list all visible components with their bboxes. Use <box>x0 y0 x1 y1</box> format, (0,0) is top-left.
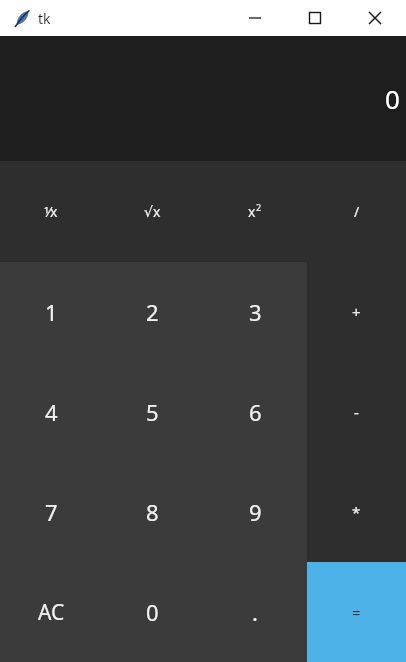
staticText: - <box>354 402 359 422</box>
button[interactable]: / <box>307 161 406 262</box>
button[interactable]: 8 <box>102 462 203 562</box>
button[interactable]: + <box>307 262 406 362</box>
button[interactable]: Minimize <box>232 0 278 36</box>
button[interactable]: AC <box>0 562 102 662</box>
button[interactable]: 9 <box>203 462 307 562</box>
button[interactable]: = <box>307 562 406 662</box>
button[interactable]: * <box>307 462 406 562</box>
button[interactable]: 6 <box>203 362 307 462</box>
button[interactable]: 5 <box>102 362 203 462</box>
staticText: 5 <box>146 397 159 427</box>
staticText: + <box>352 302 361 322</box>
staticText: 2 <box>256 201 262 213</box>
staticText: AC <box>38 598 65 627</box>
staticText: 0 <box>146 597 159 627</box>
button[interactable]: Close <box>352 0 398 36</box>
staticText: 0 <box>385 81 400 116</box>
staticText: ⅟x <box>44 202 58 221</box>
staticText: = <box>352 602 361 622</box>
staticText: 6 <box>249 397 262 427</box>
staticText: 9 <box>249 497 262 527</box>
button[interactable]: 7 <box>0 462 102 562</box>
staticText: 8 <box>146 497 159 527</box>
button[interactable]: x <box>203 161 307 262</box>
staticText: 4 <box>45 397 58 427</box>
staticText: . <box>252 597 258 627</box>
button[interactable]: √x <box>102 161 203 262</box>
button[interactable]: 4 <box>0 362 102 462</box>
staticText: 3 <box>249 297 262 327</box>
button[interactable]: 3 <box>203 262 307 362</box>
staticText: √x <box>144 202 161 221</box>
staticText: 1 <box>45 297 58 327</box>
staticText: x <box>248 202 256 221</box>
button[interactable]: - <box>307 362 406 462</box>
button[interactable]: 2 <box>102 262 203 362</box>
staticText: / <box>354 202 360 221</box>
staticText: 2 <box>146 297 159 327</box>
button[interactable]: 1 <box>0 262 102 362</box>
button[interactable]: 0 <box>102 562 203 662</box>
staticText: tk <box>38 9 51 28</box>
button[interactable]: ⅟x <box>0 161 102 262</box>
button[interactable]: Maximize <box>292 0 338 36</box>
staticText: 7 <box>45 497 58 527</box>
staticText: * <box>352 502 361 522</box>
button[interactable]: . <box>203 562 307 662</box>
